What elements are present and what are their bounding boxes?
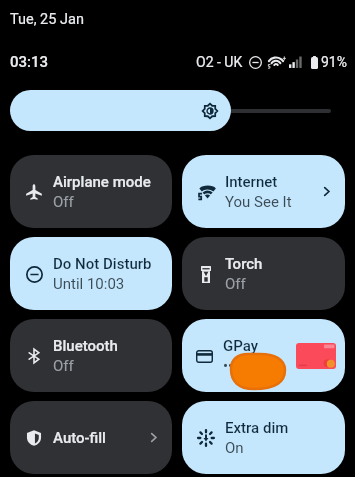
button[interactable]: Extra dim — [182, 401, 345, 474]
button[interactable]: Airplane mode — [10, 155, 172, 228]
button[interactable]: Brightness — [10, 90, 345, 131]
staticText: O2 - UK — [196, 54, 243, 70]
button[interactable]: GPay — [182, 319, 345, 392]
staticText: •• 5678 — [223, 357, 271, 375]
staticText: Off — [53, 193, 74, 211]
staticText: Off — [53, 357, 74, 375]
staticText: On — [225, 439, 244, 457]
staticText: Bluetooth — [53, 337, 118, 355]
staticText: Airplane mode — [53, 173, 151, 191]
staticText: Off — [225, 275, 246, 293]
staticText: You See It — [225, 193, 292, 211]
staticText: Internet — [225, 173, 278, 191]
button[interactable]: Torch — [182, 237, 345, 310]
staticText: Do Not Disturb — [53, 255, 152, 273]
staticText: Tue, 25 Jan — [10, 11, 84, 28]
staticText: 91% — [321, 54, 347, 70]
staticText: GPay — [223, 337, 259, 355]
staticText: Auto-fill — [53, 429, 106, 447]
button[interactable]: Bluetooth — [10, 319, 172, 392]
staticText: Extra dim — [225, 419, 289, 437]
button[interactable]: Auto-fill — [10, 401, 172, 474]
staticText: Torch — [225, 255, 263, 273]
button[interactable]: Do Not Disturb — [10, 237, 172, 310]
staticText: 03:13 — [10, 53, 49, 71]
staticText: Until 10:03 — [53, 275, 125, 293]
button[interactable]: Internet — [182, 155, 345, 228]
